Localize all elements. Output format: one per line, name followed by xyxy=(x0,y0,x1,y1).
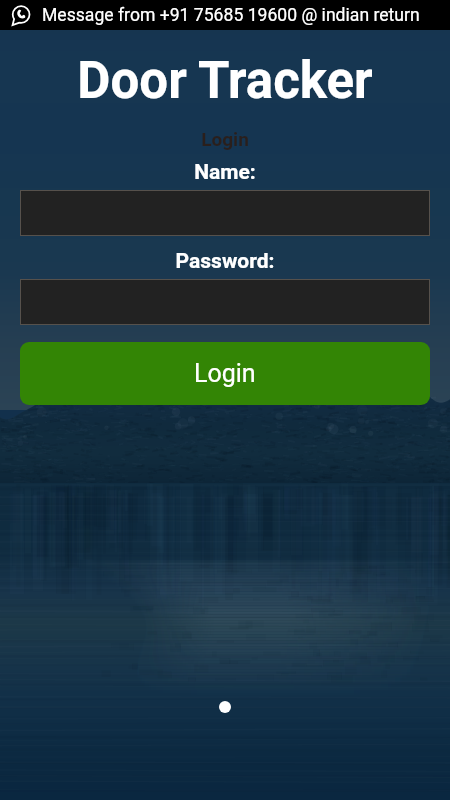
staticText: Door Tracker xyxy=(0,51,450,111)
staticText: Name: xyxy=(0,160,450,185)
button[interactable] xyxy=(20,279,430,325)
staticText: Login xyxy=(194,359,256,388)
button[interactable]: WhatsApp notification xyxy=(0,0,450,30)
staticText: Login xyxy=(0,128,450,150)
staticText: Message from +91 75685 19600 @ indian re… xyxy=(42,5,420,26)
staticText: Password: xyxy=(0,249,450,274)
button[interactable]: Login xyxy=(20,342,430,405)
button[interactable] xyxy=(20,190,430,236)
other: WhatsApp notification xyxy=(10,5,31,26)
